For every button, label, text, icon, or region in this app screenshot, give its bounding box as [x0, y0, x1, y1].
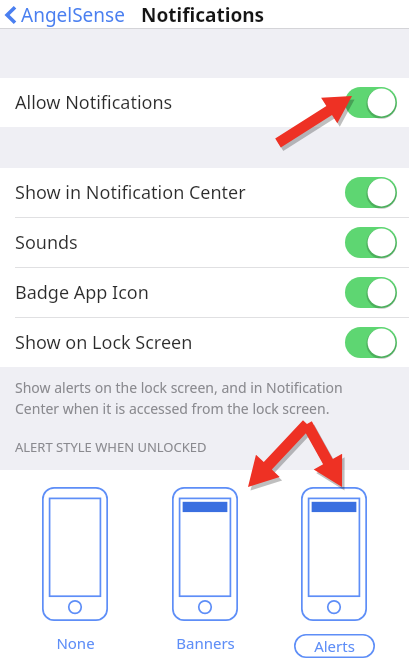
button[interactable]: Toggle — [345, 227, 397, 258]
staticText: Center when it is accessed from the lock… — [15, 399, 330, 418]
staticText: None — [56, 633, 95, 653]
staticText: Allow Notifications — [15, 90, 173, 115]
button[interactable]: None — [20, 470, 130, 653]
staticText: Banners — [176, 633, 235, 653]
button[interactable]: Allow Notifications — [0, 78, 409, 127]
button[interactable]: Show on Lock Screen — [0, 318, 409, 367]
staticText: Show on Lock Screen — [15, 330, 193, 355]
button[interactable]: Sounds — [0, 218, 409, 267]
staticText: Notifications — [141, 2, 265, 28]
button[interactable]: Toggle — [345, 327, 397, 358]
staticText: Show in Notification Center — [15, 180, 246, 205]
button[interactable]: Toggle — [345, 87, 397, 118]
staticText: Badge App Icon — [15, 280, 149, 305]
staticText: ALERT STYLE WHEN UNLOCKED — [15, 438, 207, 456]
button[interactable]: Badge App Icon — [0, 268, 409, 317]
button[interactable]: Alerts — [279, 470, 389, 659]
button[interactable]: Banners — [150, 470, 260, 653]
staticText: AngelSense — [21, 2, 125, 28]
staticText: Show alerts on the lock screen, and in N… — [15, 378, 343, 397]
button[interactable]: Toggle — [345, 277, 397, 308]
button[interactable]: Show in Notification Center — [0, 168, 409, 217]
button[interactable]: Toggle — [345, 177, 397, 208]
button[interactable]: AngelSense — [0, 2, 133, 28]
staticText: Sounds — [15, 230, 78, 255]
staticText: Alerts — [314, 636, 355, 656]
